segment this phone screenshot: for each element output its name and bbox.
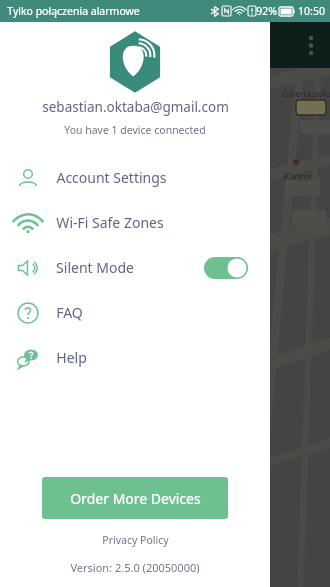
button[interactable]: FAQ bbox=[0, 290, 270, 335]
button[interactable]: Help bbox=[0, 335, 270, 380]
button[interactable]: Silent Mode toggle bbox=[204, 257, 248, 279]
staticText: Account Settings bbox=[56, 168, 167, 187]
staticText: Silent Mode bbox=[56, 258, 134, 277]
button[interactable]: Account Settings bbox=[0, 155, 270, 200]
staticText: Galeria południ bbox=[282, 88, 330, 100]
staticText: Privacy Policy bbox=[102, 533, 169, 547]
staticText: 92% bbox=[256, 4, 277, 18]
staticText: You have 1 device connected bbox=[64, 123, 206, 137]
staticText: Order More Devices bbox=[70, 489, 201, 508]
button[interactable]: Privacy Policy bbox=[0, 533, 270, 547]
button[interactable]: Order More Devices bbox=[42, 477, 228, 519]
staticText: Wi-Fi Safe Zones bbox=[56, 213, 164, 232]
staticText: Help bbox=[56, 348, 87, 367]
button[interactable]: Wi-Fi Safe Zones bbox=[0, 200, 270, 245]
staticText: FAQ bbox=[56, 303, 83, 322]
button[interactable]: Silent Mode bbox=[0, 245, 270, 290]
staticText: 10:50 bbox=[298, 4, 325, 18]
staticText: Kantor bbox=[284, 170, 313, 182]
staticText: sebastian.oktaba@gmail.com bbox=[42, 98, 229, 116]
staticText: Tylko połączenia alarmowe bbox=[7, 4, 140, 18]
staticText: Version: 2.5.0 (20050000) bbox=[70, 560, 200, 575]
